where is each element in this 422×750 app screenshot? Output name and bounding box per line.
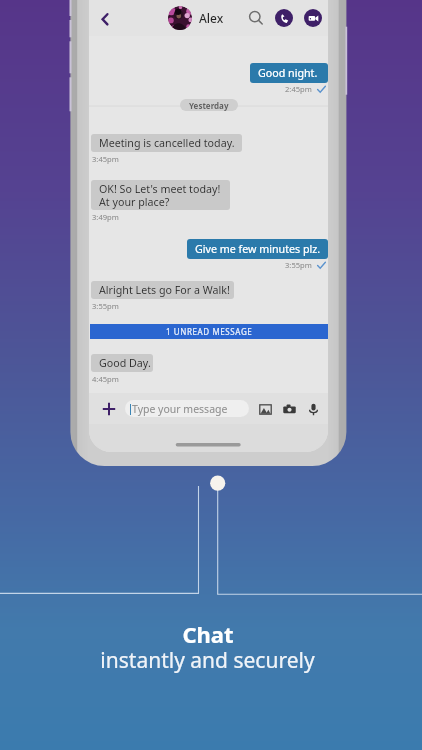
staticText: Type your message: [132, 402, 228, 416]
staticText: 4:45pm: [92, 374, 119, 384]
staticText: Give me few minutes plz.: [195, 242, 321, 257]
staticText: instantly and securely: [100, 646, 315, 675]
staticText: Yesterday: [189, 100, 229, 111]
staticText: Good night.: [258, 66, 318, 81]
staticText: 1 UNREAD MESSAGE: [166, 326, 253, 337]
button[interactable]: Type your message: [125, 400, 249, 417]
button[interactable]: Back: [94, 7, 116, 29]
button[interactable]: Alright Lets go For a Walk!: [91, 281, 234, 299]
button[interactable]: OK! So Let's meet today! At your place?: [91, 180, 230, 210]
staticText: Good Day.: [99, 356, 151, 371]
button[interactable]: Good Day.: [91, 354, 153, 372]
staticText: 3:49pm: [92, 212, 119, 222]
button[interactable]: Meeting is cancelled today.: [91, 134, 242, 152]
staticText: Meeting is cancelled today.: [99, 136, 235, 151]
staticText: OK! So Let's meet today! At your place?: [99, 182, 221, 209]
staticText: Chat: [182, 619, 234, 649]
staticText: Alex: [199, 10, 224, 26]
button[interactable]: Give me few minutes plz.: [187, 239, 328, 259]
staticText: 2:45pm: [285, 84, 312, 94]
button[interactable]: Voice message: [305, 401, 321, 417]
button[interactable]: Video call: [304, 9, 322, 27]
staticText: 3:55pm: [92, 301, 119, 311]
staticText: Alright Lets go For a Walk!: [99, 283, 230, 298]
button[interactable]: Call: [275, 9, 293, 27]
button[interactable]: Add attachment: [100, 400, 117, 417]
staticText: 3:55pm: [285, 260, 312, 270]
button[interactable]: Camera: [281, 401, 297, 417]
button[interactable]: 1 UNREAD MESSAGE: [90, 324, 328, 339]
button[interactable]: Gallery: [257, 401, 273, 417]
button[interactable]: Search: [246, 8, 266, 28]
staticText: 3:45pm: [92, 154, 119, 164]
button[interactable]: Good night.: [250, 63, 328, 83]
